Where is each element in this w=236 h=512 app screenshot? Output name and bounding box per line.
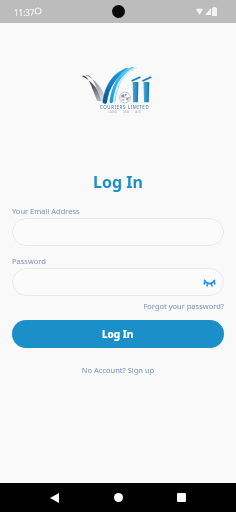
button[interactable]: [12, 218, 224, 246]
button[interactable]: Show password: [201, 274, 217, 290]
staticText: Log In: [102, 327, 134, 341]
staticText: LAND · SEA · AIR: [108, 110, 142, 114]
button[interactable]: Show password: [12, 268, 224, 296]
staticText: Your Email Address: [12, 206, 80, 216]
button[interactable]: Forgot your password?: [12, 301, 224, 311]
button[interactable]: Home: [104, 487, 132, 508]
staticText: COURIERS LIMITED: [100, 104, 150, 110]
button[interactable]: Back: [40, 487, 68, 508]
button[interactable]: No Account? Sign up: [0, 365, 236, 375]
button[interactable]: Recent apps: [167, 487, 195, 508]
staticText: Log In: [0, 171, 236, 193]
staticText: 11:37: [14, 7, 35, 18]
button[interactable]: Log In: [12, 320, 224, 348]
staticText: Password: [12, 256, 46, 266]
